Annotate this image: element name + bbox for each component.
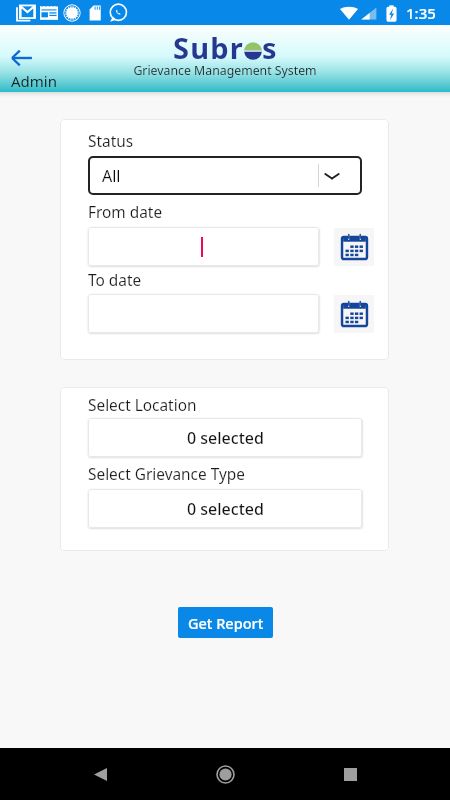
staticText: Select Grievance Type [88, 464, 245, 485]
staticText: Admin [11, 71, 57, 91]
staticText: 1:35 [406, 3, 436, 23]
staticText: Select Location [88, 395, 197, 416]
staticText: s [262, 28, 278, 67]
button[interactable] [88, 294, 319, 333]
staticText: From date [88, 202, 163, 223]
staticText: All [102, 165, 121, 187]
staticText: 0 selected [187, 498, 264, 520]
button[interactable]: Get Report [178, 607, 273, 638]
staticText: Subr [173, 28, 244, 67]
staticText: 0 selected [187, 427, 264, 449]
button[interactable]: Recents [336, 760, 364, 788]
button[interactable]: 0 selected [88, 418, 362, 457]
button[interactable]: Back [4, 40, 40, 76]
button[interactable]: All [88, 156, 362, 195]
staticText: Status [88, 131, 134, 152]
button[interactable]: Home [210, 759, 240, 789]
staticText: Get Report [188, 613, 264, 633]
button[interactable]: 0 selected [88, 489, 362, 528]
button[interactable]: Pick date [334, 228, 374, 266]
staticText: Grievance Management System [133, 62, 317, 79]
button[interactable]: Pick date [334, 295, 374, 333]
button[interactable] [88, 227, 319, 266]
staticText: To date [88, 270, 142, 291]
button[interactable]: Back [86, 760, 114, 788]
